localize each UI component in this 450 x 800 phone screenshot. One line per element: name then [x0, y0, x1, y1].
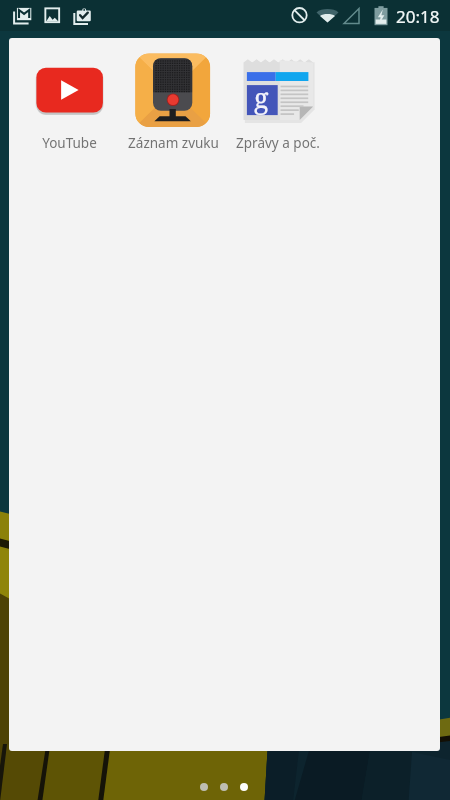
staticText: 20:18 — [396, 5, 440, 28]
button[interactable]: Home screen page 3, current — [240, 783, 248, 791]
button[interactable]: Záznam zvuku — [122, 52, 225, 152]
staticText: YouTube — [42, 134, 97, 152]
staticText: g — [254, 79, 269, 116]
button[interactable]: g — [226, 52, 329, 152]
button[interactable]: Home screen page 2 — [220, 783, 228, 791]
staticText: Záznam zvuku — [128, 134, 219, 152]
button[interactable]: YouTube — [18, 52, 121, 152]
staticText: Zprávy a poč. — [236, 134, 320, 152]
button[interactable]: Home screen page 1 — [200, 783, 208, 791]
